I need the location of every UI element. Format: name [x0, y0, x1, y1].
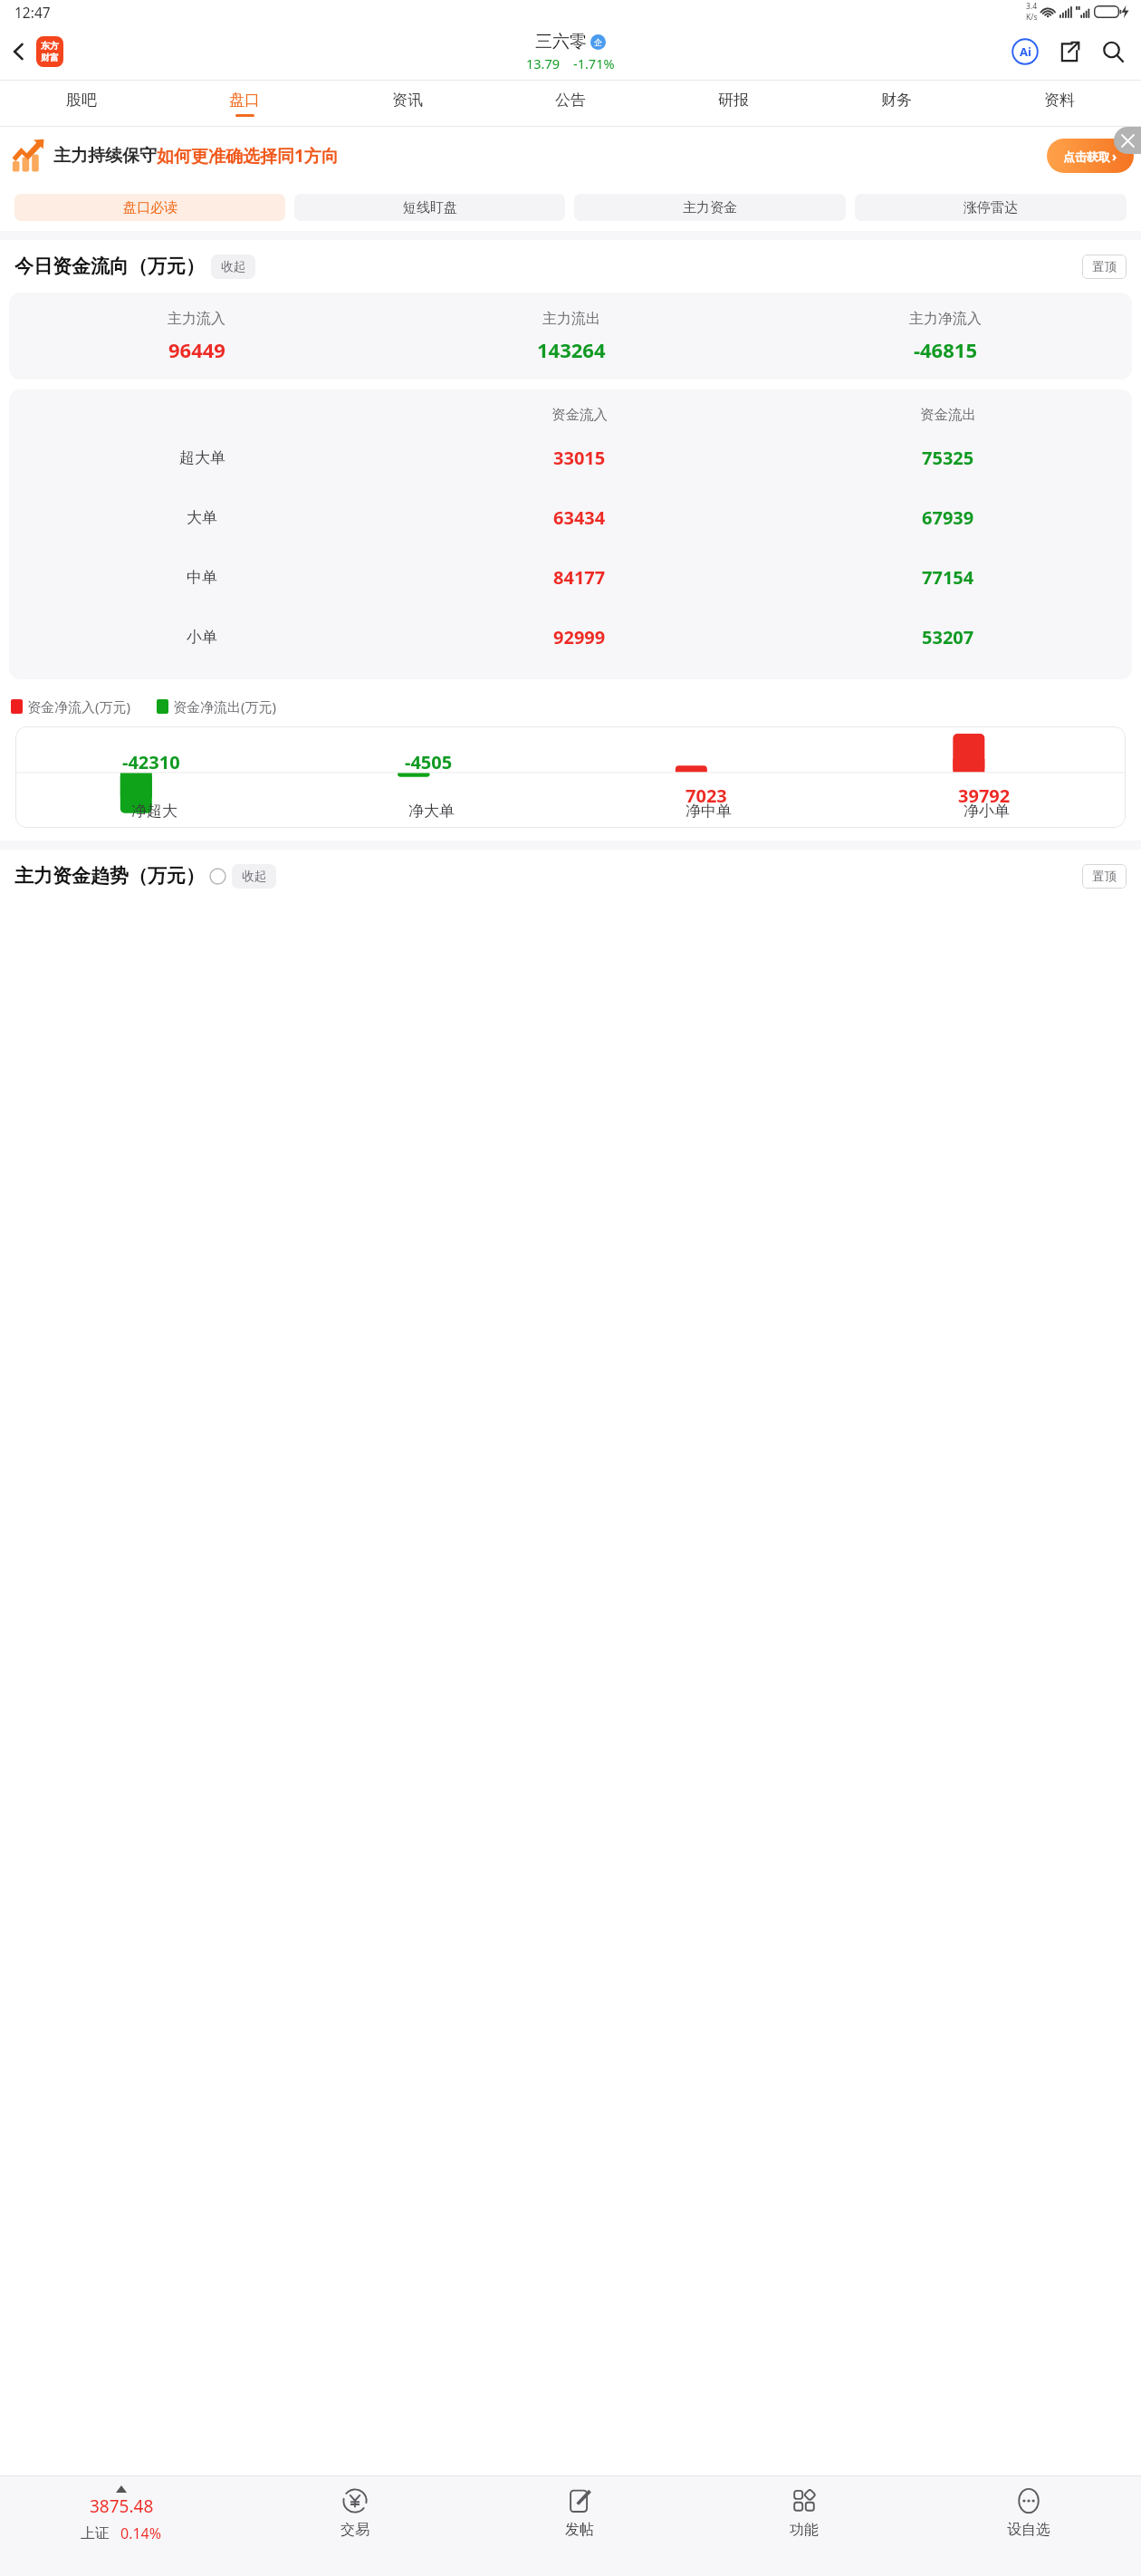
staticText: 13.79 — [526, 54, 561, 72]
staticText: 交易 — [340, 2521, 369, 2539]
button[interactable]: 发帖 — [467, 2476, 692, 2576]
staticText: 资金净流入(万元) — [27, 697, 131, 716]
button[interactable]: Back — [4, 31, 69, 72]
staticText: 盘口必读 — [123, 199, 177, 216]
staticText: › — [1112, 148, 1117, 165]
staticText: 置顶 — [1092, 869, 1117, 884]
staticText: 今日资金流向（万元） — [14, 255, 205, 278]
staticText: 上证 — [81, 2524, 110, 2542]
button[interactable]: 置顶 — [1082, 864, 1127, 889]
staticText: K/s — [1026, 12, 1038, 23]
staticText: 资金净流出(万元) — [173, 697, 277, 716]
staticText: 收起 — [242, 869, 266, 884]
staticText: 短线盯盘 — [403, 199, 457, 216]
staticText: 中单 — [187, 568, 217, 587]
staticText: 净中单 — [686, 802, 732, 821]
staticText: 点击获取 — [1063, 149, 1110, 164]
button[interactable]: 资料 — [978, 81, 1141, 126]
staticText: 0.14% — [120, 2523, 162, 2543]
staticText: 主力流出 — [542, 310, 600, 328]
staticText: 净大单 — [408, 802, 455, 821]
staticText: 财富 — [41, 52, 59, 63]
button[interactable]: 财务 — [815, 81, 978, 126]
staticText: 财务 — [881, 91, 912, 110]
button[interactable]: Search — [1098, 36, 1128, 67]
staticText: Ai — [1020, 43, 1031, 60]
button[interactable]: 收起 — [211, 255, 255, 279]
staticText: 资料 — [1044, 91, 1075, 110]
staticText: 发帖 — [565, 2521, 594, 2539]
button[interactable]: 盘口 — [163, 81, 326, 126]
staticText: 小单 — [187, 628, 217, 647]
staticText: 12:47 — [14, 3, 51, 22]
staticText: 股吧 — [66, 91, 97, 110]
button[interactable]: 主力资金 — [574, 194, 846, 221]
staticText: 92999 — [553, 625, 606, 649]
staticText: 3875.48 — [90, 2494, 154, 2518]
button[interactable]: 功能 — [692, 2476, 916, 2576]
staticText: 大单 — [187, 508, 217, 527]
staticText: 东方 — [41, 40, 59, 52]
button[interactable]: 短线盯盘 — [294, 194, 565, 221]
staticText: 资讯 — [392, 91, 423, 110]
staticText: 收起 — [221, 259, 245, 274]
staticText: 主力资金趋势（万元） — [14, 864, 205, 888]
button[interactable]: AI assistant — [1009, 35, 1041, 68]
button[interactable]: 盘口必读 — [14, 194, 285, 221]
staticText: 53207 — [922, 625, 974, 649]
button[interactable]: 3875.48 — [0, 2476, 243, 2576]
staticText: 研报 — [718, 91, 749, 110]
staticText: 主力持续保守 — [53, 145, 157, 167]
staticText: 净小单 — [964, 802, 1010, 821]
staticText: 三六零 — [535, 31, 587, 53]
staticText: -46815 — [914, 336, 977, 363]
staticText: 置顶 — [1092, 259, 1117, 274]
staticText: 企 — [594, 37, 602, 47]
button[interactable]: 研报 — [652, 81, 815, 126]
staticText: 资金流出 — [920, 406, 976, 424]
button[interactable]: 置顶 — [1082, 255, 1127, 279]
staticText: 主力流入 — [168, 310, 225, 328]
button[interactable]: 收起 — [232, 864, 276, 889]
button[interactable]: Close ad — [1114, 127, 1141, 154]
staticText: 资金流入 — [551, 406, 608, 424]
staticText: 143264 — [537, 336, 606, 363]
staticText: 净超大 — [131, 802, 177, 821]
staticText: 功能 — [790, 2521, 819, 2539]
staticText: 75325 — [922, 446, 974, 470]
staticText: 84177 — [553, 565, 606, 590]
staticText: 39792 — [958, 783, 1011, 808]
staticText: 67939 — [922, 505, 974, 530]
button[interactable]: 三六零 — [526, 31, 615, 72]
staticText: 3.4 — [1026, 1, 1038, 12]
staticText: 77154 — [922, 565, 974, 590]
button[interactable]: 设自选 — [916, 2476, 1141, 2576]
staticText: 主力资金 — [683, 199, 737, 216]
staticText: 33015 — [553, 446, 606, 470]
staticText: 涨停雷达 — [964, 199, 1018, 216]
staticText: -42310 — [122, 750, 180, 774]
staticText: 7023 — [686, 783, 727, 808]
staticText: 主力净流入 — [909, 310, 982, 328]
button[interactable]: 公告 — [489, 81, 652, 126]
staticText: 超大单 — [179, 448, 225, 467]
staticText: 盘口 — [229, 91, 260, 110]
staticText: 公告 — [555, 91, 586, 110]
staticText: 63434 — [553, 505, 606, 530]
staticText: -1.71% — [573, 54, 615, 72]
button[interactable]: 资讯 — [326, 81, 489, 126]
button[interactable]: 主力持续保守 — [0, 127, 1141, 184]
button[interactable]: 点击获取 — [1047, 139, 1134, 173]
button[interactable]: 交易 — [243, 2476, 467, 2576]
staticText: 如何更准确选择同1方向 — [157, 144, 339, 168]
staticText: 设自选 — [1007, 2521, 1050, 2539]
staticText: 96449 — [168, 336, 225, 363]
button[interactable]: 股吧 — [0, 81, 163, 126]
staticText: -4505 — [405, 750, 453, 774]
button[interactable]: 涨停雷达 — [855, 194, 1127, 221]
button[interactable]: Share — [1054, 36, 1085, 67]
